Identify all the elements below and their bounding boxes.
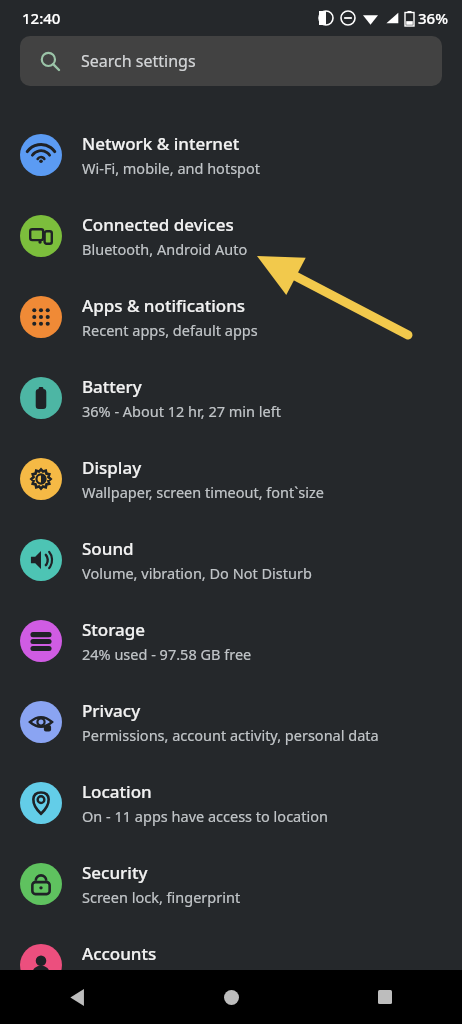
button[interactable]: Privacy bbox=[0, 681, 462, 762]
button[interactable]: Security bbox=[0, 843, 462, 924]
staticText: 36% - About 12 hr, 27 min left bbox=[82, 401, 281, 421]
button[interactable]: Battery bbox=[0, 357, 462, 438]
staticText: Bluetooth, Android Auto bbox=[82, 239, 248, 259]
staticText: 24% used - 97.58 GB free bbox=[82, 644, 252, 664]
staticText: Screen lock, fingerprint bbox=[82, 887, 241, 907]
button[interactable]: Network & internet bbox=[0, 114, 462, 195]
button[interactable]: Back bbox=[0, 970, 154, 1024]
staticText: Google bbox=[82, 968, 131, 988]
staticText: Privacy bbox=[82, 699, 141, 722]
button[interactable]: Storage bbox=[0, 600, 462, 681]
button[interactable]: Location bbox=[0, 762, 462, 843]
button[interactable]: Home bbox=[154, 970, 308, 1024]
staticText: Battery bbox=[82, 375, 142, 398]
button[interactable]: Recent apps bbox=[308, 970, 462, 1024]
staticText: Storage bbox=[82, 618, 146, 641]
button[interactable]: Apps & notifications bbox=[0, 276, 462, 357]
staticText: Wallpaper, screen timeout, font`size bbox=[82, 482, 325, 502]
staticText: Display bbox=[82, 456, 142, 479]
staticText: Permissions, account activity, personal … bbox=[82, 725, 379, 745]
staticText: Search settings bbox=[81, 50, 196, 72]
staticText: 36% bbox=[418, 8, 448, 28]
button[interactable]: Display bbox=[0, 438, 462, 519]
staticText: Recent apps, default apps bbox=[82, 320, 258, 340]
staticText: On - 11 apps have access to location bbox=[82, 806, 328, 826]
staticText: Security bbox=[82, 861, 148, 884]
staticText: 12:40 bbox=[22, 8, 61, 28]
staticText: Wi-Fi, mobile, and hotspot bbox=[82, 158, 261, 178]
button[interactable]: Search settings bbox=[20, 36, 442, 86]
button[interactable]: Accounts bbox=[0, 924, 462, 1005]
staticText: Sound bbox=[82, 537, 134, 560]
staticText: Accounts bbox=[82, 942, 157, 965]
staticText: Apps & notifications bbox=[82, 294, 246, 317]
button[interactable]: Connected devices bbox=[0, 195, 462, 276]
staticText: Connected devices bbox=[82, 213, 234, 236]
staticText: Volume, vibration, Do Not Disturb bbox=[82, 563, 312, 583]
button[interactable]: Sound bbox=[0, 519, 462, 600]
staticText: Location bbox=[82, 780, 152, 803]
staticText: Network & internet bbox=[82, 132, 240, 155]
